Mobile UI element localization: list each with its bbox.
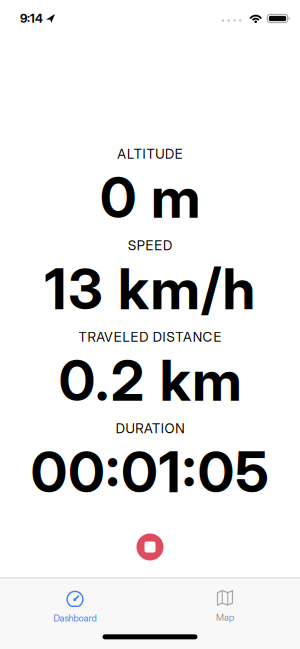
staticText: ALTITUDE [117, 146, 183, 162]
staticText: 13 km/h [44, 256, 255, 322]
staticText: 0 m [100, 164, 200, 231]
staticText: 0.2 km [59, 347, 241, 414]
staticText: Map [216, 612, 234, 623]
staticText: 9:14 [20, 11, 43, 26]
staticText: TRAVELED DISTANCE [79, 329, 221, 345]
button[interactable]: Dashboard [0, 581, 150, 624]
button[interactable]: Stop [136, 533, 163, 560]
staticText: 00:01:05 [31, 439, 269, 505]
staticText: SPEED [128, 238, 172, 253]
staticText: Dashboard [53, 613, 96, 624]
staticText: DURATION [116, 421, 184, 436]
button[interactable]: Map [150, 582, 300, 623]
